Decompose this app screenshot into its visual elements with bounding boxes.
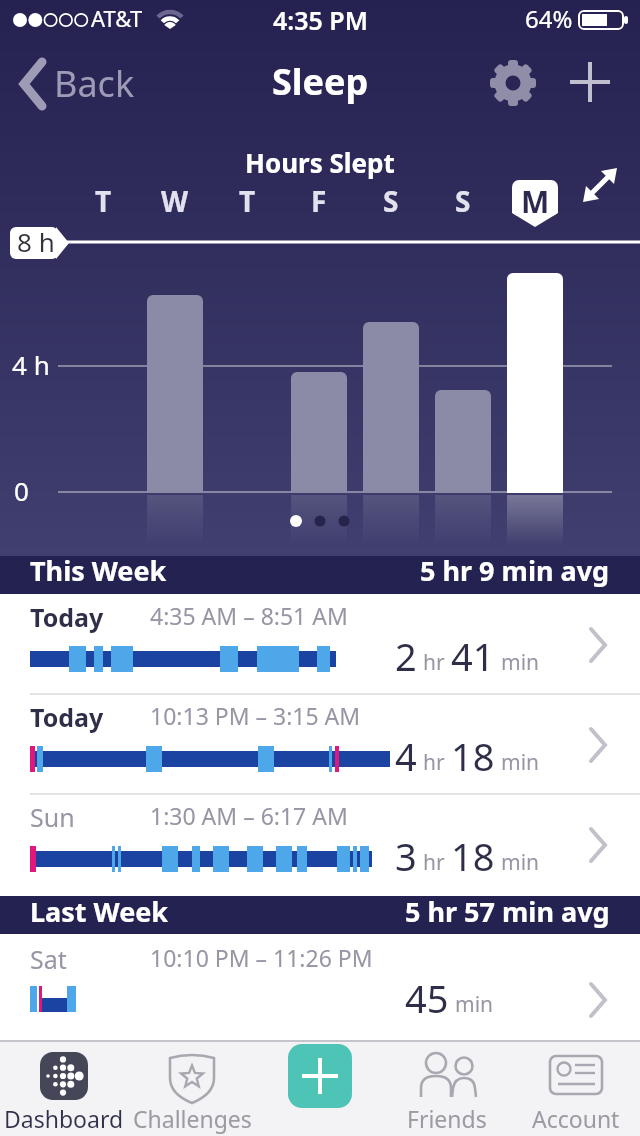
staticText: hr bbox=[423, 848, 445, 877]
staticText: F bbox=[311, 182, 327, 220]
staticText: min bbox=[455, 990, 494, 1019]
staticText: S bbox=[455, 182, 471, 220]
staticText: 3 bbox=[395, 830, 417, 882]
staticText: This Week bbox=[30, 552, 167, 589]
staticText: Hours Slept bbox=[245, 145, 395, 180]
button[interactable] bbox=[10, 50, 140, 120]
staticText: W bbox=[161, 182, 189, 220]
staticText: Back bbox=[54, 59, 135, 108]
button[interactable] bbox=[288, 1044, 352, 1108]
staticText: T bbox=[95, 182, 112, 220]
staticText: min bbox=[501, 848, 540, 877]
staticText: S bbox=[383, 182, 399, 220]
button[interactable] bbox=[0, 694, 640, 794]
staticText: Sat bbox=[30, 942, 67, 976]
staticText: min bbox=[501, 748, 540, 777]
button[interactable] bbox=[0, 794, 640, 894]
staticText: 18 bbox=[451, 730, 495, 782]
staticText: 45 bbox=[405, 972, 449, 1024]
button[interactable] bbox=[485, 55, 541, 111]
staticText: Account bbox=[532, 1103, 620, 1134]
staticText: 0 bbox=[14, 473, 29, 508]
staticText: 4:35 AM – 8:51 AM bbox=[150, 600, 348, 631]
staticText: T bbox=[239, 182, 256, 220]
button[interactable] bbox=[526, 1045, 626, 1133]
staticText: 2 bbox=[395, 630, 417, 682]
button[interactable] bbox=[0, 594, 640, 694]
staticText: 10:13 PM – 3:15 AM bbox=[150, 700, 361, 731]
staticText: AT&T bbox=[91, 3, 143, 33]
staticText: Sun bbox=[30, 800, 75, 834]
staticText: 41 bbox=[451, 630, 495, 682]
staticText: 10:10 PM – 11:26 PM bbox=[150, 942, 373, 973]
button[interactable] bbox=[0, 934, 640, 1040]
button[interactable] bbox=[562, 54, 618, 110]
staticText: 4:35 PM bbox=[273, 3, 368, 37]
staticText: min bbox=[501, 648, 540, 677]
staticText: 1:30 AM – 6:17 AM bbox=[150, 800, 348, 831]
staticText: Last Week bbox=[30, 893, 169, 930]
button[interactable] bbox=[142, 1045, 242, 1133]
staticText: 5 hr 9 min avg bbox=[420, 552, 610, 589]
staticText: M bbox=[521, 181, 550, 222]
staticText: 18 bbox=[451, 830, 495, 882]
staticText: 5 hr 57 min avg bbox=[405, 893, 610, 930]
staticText: 4 bbox=[395, 730, 417, 782]
staticText: hr bbox=[423, 648, 445, 677]
staticText: 4 h bbox=[12, 347, 50, 382]
button[interactable] bbox=[397, 1045, 497, 1133]
button[interactable] bbox=[575, 160, 625, 210]
staticText: 64% bbox=[525, 2, 573, 35]
button[interactable] bbox=[14, 1045, 114, 1133]
staticText: Today bbox=[30, 700, 104, 734]
staticText: Today bbox=[30, 600, 104, 634]
staticText: Dashboard bbox=[4, 1103, 124, 1134]
staticText: hr bbox=[423, 748, 445, 777]
staticText: Challenges bbox=[133, 1103, 252, 1134]
staticText: Sleep bbox=[272, 57, 369, 106]
staticText: 8 h bbox=[17, 224, 55, 259]
staticText: Friends bbox=[407, 1103, 487, 1134]
